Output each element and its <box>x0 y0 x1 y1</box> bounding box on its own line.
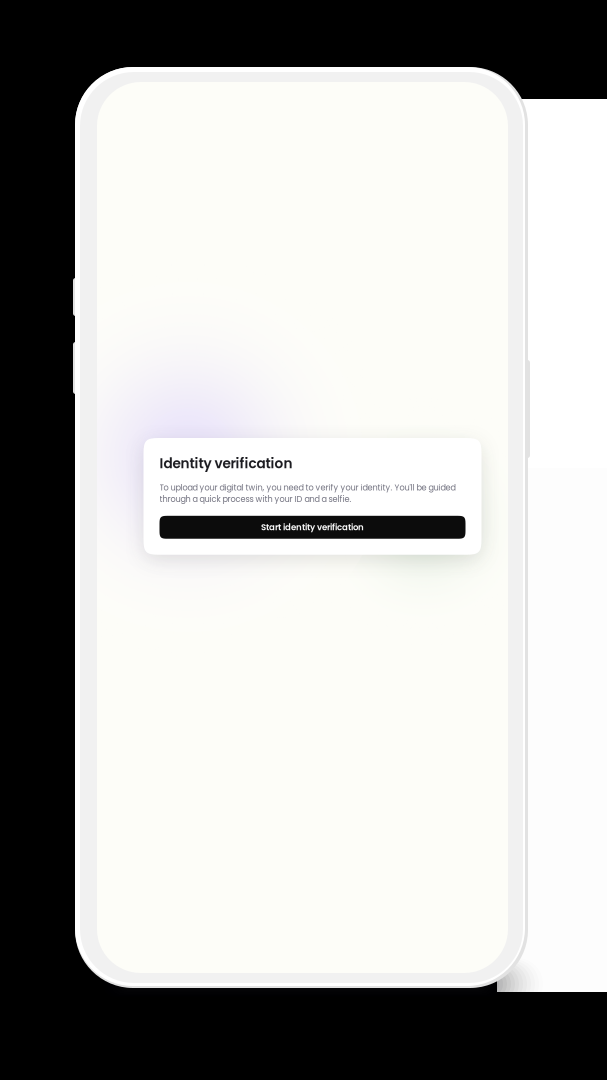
staticText: Start identity verification <box>261 521 364 533</box>
staticText: Identity verification <box>159 454 292 473</box>
staticText: To upload your digital twin, you need to… <box>159 482 455 505</box>
button[interactable]: Start identity verification <box>159 516 465 539</box>
